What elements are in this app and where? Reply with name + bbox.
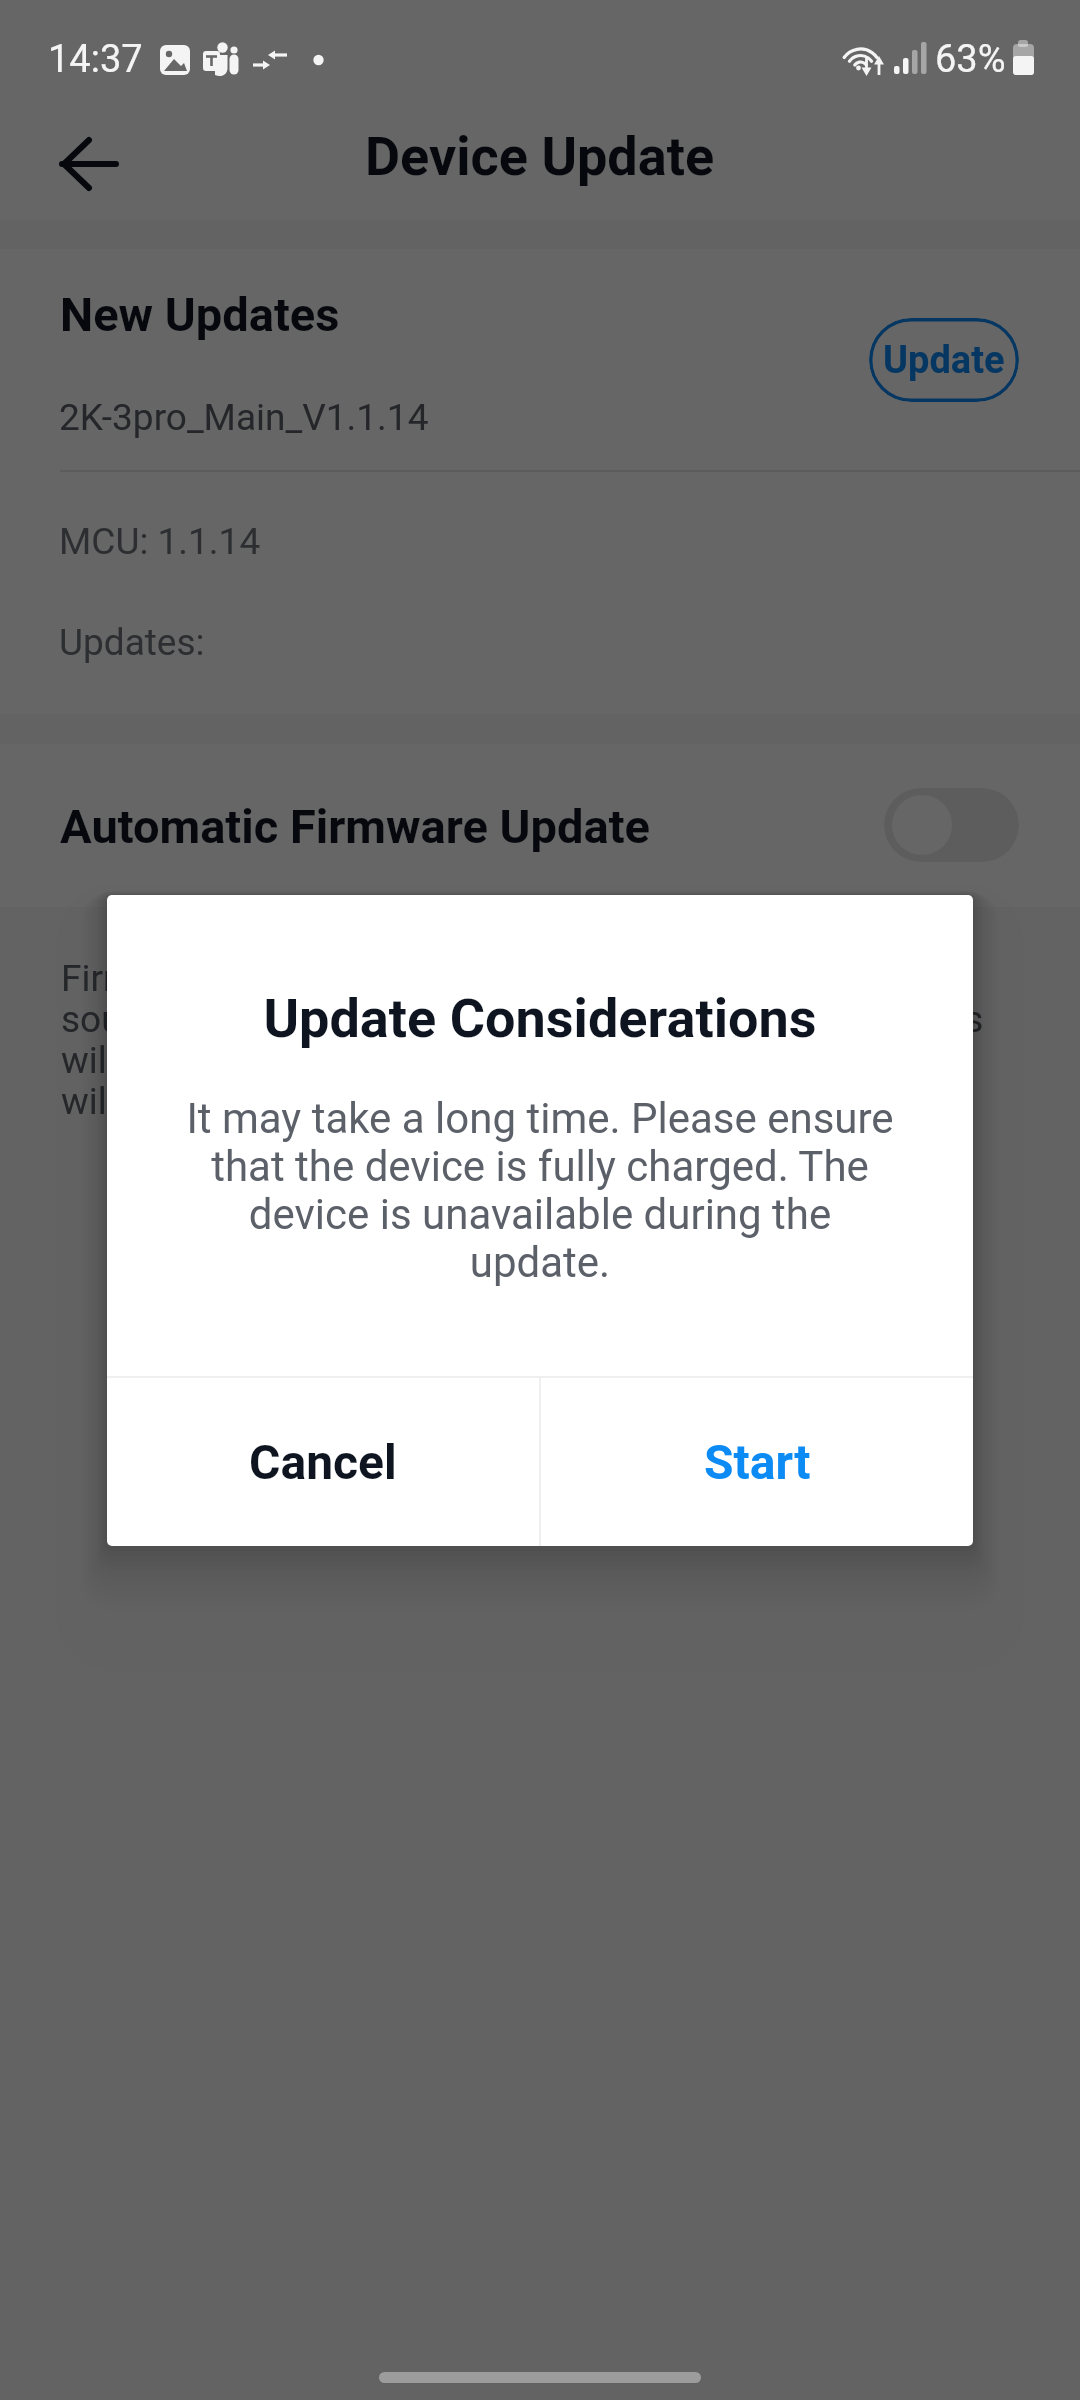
staticText: Automatic Firmware Update bbox=[60, 799, 651, 854]
button[interactable]: Cancel bbox=[107, 1378, 539, 1546]
button[interactable]: Automatic Firmware Update bbox=[0, 744, 1080, 907]
staticText: New Updates bbox=[60, 287, 340, 342]
staticText: 14:37 bbox=[48, 37, 143, 82]
staticText: It may take a long time. Please ensure t… bbox=[179, 1094, 901, 1287]
staticText: Cancel bbox=[249, 1434, 397, 1490]
staticText: MCU: 1.1.14 bbox=[59, 520, 261, 563]
staticText: Firmware updates can only be downloaded … bbox=[61, 957, 1080, 1123]
button[interactable]: Update bbox=[869, 318, 1019, 402]
staticText: Updates: bbox=[59, 621, 205, 664]
staticText: Device Update bbox=[365, 125, 715, 188]
staticText: Update bbox=[883, 338, 1005, 383]
staticText: 2K-3pro_Main_V1.1.14 bbox=[59, 396, 429, 439]
button[interactable]: Start bbox=[541, 1378, 973, 1546]
staticText: Update Considerations bbox=[107, 987, 973, 1050]
staticText: 63% bbox=[935, 37, 1006, 82]
button[interactable]: Back bbox=[41, 116, 137, 212]
button[interactable]: Automatic firmware update bbox=[884, 788, 1019, 862]
staticText: Start bbox=[704, 1434, 811, 1490]
